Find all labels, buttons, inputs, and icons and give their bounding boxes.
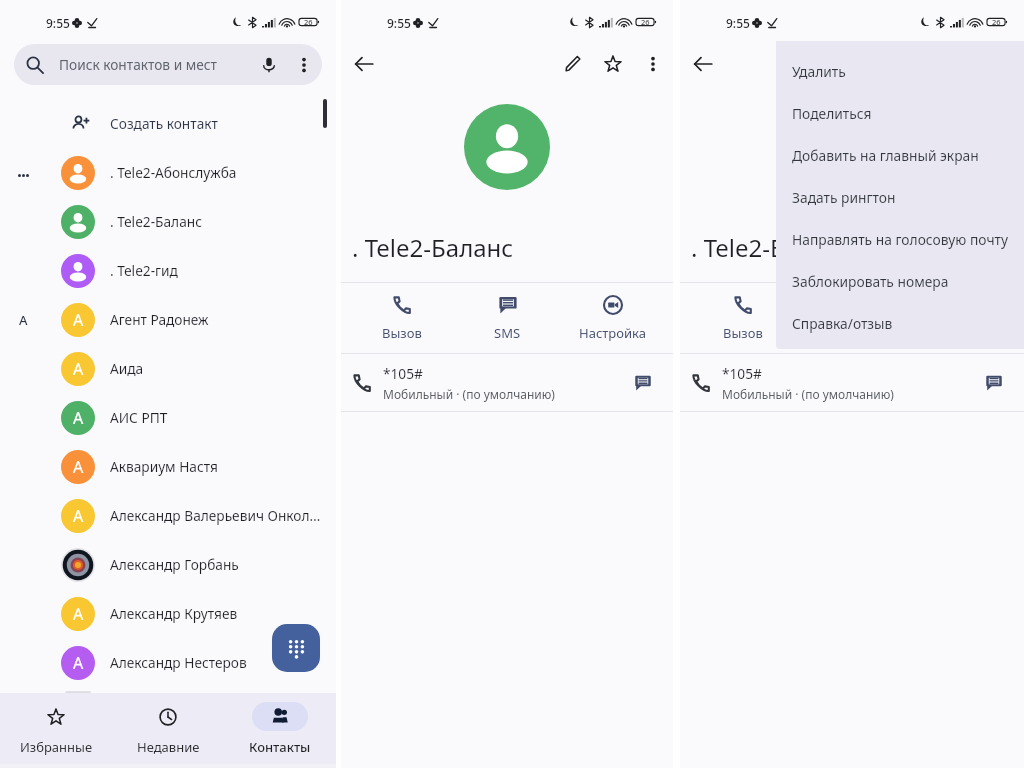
button[interactable]: Настройка	[560, 283, 665, 353]
staticText: . Tele2-Баланс	[691, 231, 853, 264]
staticText: Александр Крутяев	[110, 604, 238, 623]
button[interactable]: A	[0, 491, 336, 540]
staticText: Удалить	[792, 62, 846, 81]
staticText: A	[73, 505, 84, 527]
staticText: A	[73, 309, 84, 331]
button[interactable]: A	[0, 393, 336, 442]
staticText: Аквариум Настя	[110, 457, 218, 476]
staticText: . Tele2-гид	[110, 261, 178, 280]
button[interactable]: Вызов	[688, 283, 798, 353]
staticText: Поиск контактов и мест	[59, 55, 217, 74]
button[interactable]: Поиск контактов и мест	[14, 44, 322, 85]
button[interactable]: Добавить на главный экран	[776, 134, 1024, 176]
staticText: Контакты	[249, 738, 311, 756]
staticText: 9:55	[726, 15, 750, 31]
staticText: Настройка	[579, 324, 646, 342]
button[interactable]: More options	[287, 48, 321, 82]
button[interactable]: Настройка	[907, 283, 1016, 353]
button[interactable]: Создать контакт	[0, 99, 336, 148]
staticText: 9:55	[46, 15, 70, 31]
staticText: Направлять на голосовую почту	[792, 230, 1008, 249]
button[interactable]: SMS	[798, 283, 907, 353]
button[interactable]: Справка/отзыв	[776, 302, 1024, 344]
staticText: 26	[304, 17, 313, 27]
button[interactable]: . Tele2-Баланс	[0, 197, 336, 246]
button[interactable]: Voice search	[252, 48, 286, 82]
button[interactable]: Edit	[553, 44, 593, 84]
staticText: Недавние	[137, 738, 200, 756]
staticText: A	[73, 652, 84, 674]
staticText: Агент Радонеж	[110, 310, 209, 329]
button[interactable]: A	[0, 638, 336, 687]
staticText: A	[73, 407, 84, 429]
button[interactable]: Избранные	[0, 693, 112, 764]
staticText: A	[73, 456, 84, 478]
staticText: Справка/отзыв	[792, 314, 893, 333]
staticText: Создать контакт	[110, 114, 218, 133]
staticText: . Tele2-Абонслужба	[110, 163, 237, 182]
button[interactable]: A	[0, 589, 336, 638]
button[interactable]: Направлять на голосовую почту	[776, 218, 1024, 260]
staticText: Вызов	[382, 324, 422, 342]
staticText: Александр Горбань	[110, 555, 239, 574]
button[interactable]: Недавние	[112, 693, 224, 764]
staticText: Александр Валерьевич Онкол…	[110, 506, 321, 525]
button[interactable]: . Tele2-гид	[0, 246, 336, 295]
button[interactable]: Александр Горбань	[0, 540, 336, 589]
staticText: Аида	[110, 359, 144, 378]
staticText: Вызов	[723, 324, 763, 342]
button[interactable]: A	[0, 344, 336, 393]
staticText: Мобильный · (по умолчанию)	[383, 386, 555, 402]
staticText: 9:55	[387, 15, 411, 31]
button[interactable]: Вызов	[349, 283, 455, 353]
button[interactable]: Контакты	[224, 693, 336, 764]
button[interactable]: . Tele2-Абонслужба	[0, 148, 336, 197]
staticText: SMS	[494, 324, 521, 342]
staticText: 26	[641, 17, 650, 27]
button[interactable]: A	[0, 442, 336, 491]
button[interactable]: Заблокировать номера	[776, 260, 1024, 302]
button[interactable]: Удалить	[776, 50, 1024, 92]
button[interactable]: Поделиться	[776, 92, 1024, 134]
button[interactable]: A	[0, 295, 336, 344]
staticText: *105#	[383, 364, 423, 383]
staticText: Избранные	[20, 738, 93, 756]
button[interactable]: Dialpad	[272, 624, 320, 672]
button[interactable]: Back	[683, 44, 723, 84]
button[interactable]: SMS	[455, 283, 560, 353]
button[interactable]: Back	[344, 44, 384, 84]
staticText: Поделиться	[792, 104, 872, 123]
staticText: Мобильный · (по умолчанию)	[722, 386, 894, 402]
staticText: A	[73, 603, 84, 625]
staticText: A	[19, 311, 28, 329]
staticText: *105#	[722, 364, 762, 383]
staticText: 26	[992, 17, 1001, 27]
staticText: Задать рингтон	[792, 188, 896, 207]
button[interactable]: Send message	[977, 366, 1011, 400]
staticText: . Tele2-Баланс	[110, 212, 202, 231]
staticText: Добавить на главный экран	[792, 146, 979, 165]
button[interactable]: Favorite	[593, 44, 633, 84]
staticText: Александр Нестеров	[110, 653, 247, 672]
button[interactable]: Задать рингтон	[776, 176, 1024, 218]
button[interactable]: Send message	[626, 366, 660, 400]
staticText: A	[73, 358, 84, 380]
staticText: SMS	[839, 324, 866, 342]
button[interactable]: More options	[633, 44, 673, 84]
staticText: АИС РПТ	[110, 408, 168, 427]
staticText: . Tele2-Баланс	[352, 231, 514, 264]
staticText: Заблокировать номера	[792, 272, 949, 291]
